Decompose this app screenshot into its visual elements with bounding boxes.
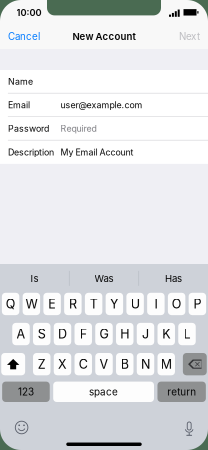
staticText: Z [38,357,46,372]
button[interactable]: N [137,353,154,375]
staticText: My Email Account [61,147,134,157]
button[interactable]: O [168,293,185,315]
staticText: O [172,296,182,312]
button[interactable]: Dictation [176,417,202,441]
button[interactable]: F [74,323,92,345]
button[interactable]: E [43,293,61,315]
staticText: Was [94,273,113,284]
button[interactable]: Q [2,293,19,315]
button[interactable]: Y [106,293,123,315]
button[interactable]: J [137,323,154,345]
button[interactable]: W [23,293,40,315]
staticText: Has [165,273,182,284]
button[interactable]: T [85,293,102,315]
button[interactable]: Description [0,140,208,164]
staticText: K [162,326,170,342]
staticText: C [79,357,88,372]
staticText: G [99,326,108,342]
button[interactable]: Name [0,70,208,93]
staticText: New Account [72,31,135,42]
button[interactable]: V [95,353,113,375]
button[interactable]: Is [0,264,69,293]
staticText: A [16,326,25,342]
staticText: X [58,357,67,372]
button[interactable]: Was [69,264,138,293]
button[interactable]: Next [171,24,208,49]
staticText: Password [8,123,49,134]
button[interactable]: Email [0,93,208,117]
button[interactable]: Password [0,117,208,140]
button[interactable]: Z [33,353,50,375]
staticText: U [131,296,140,312]
button[interactable]: I [147,293,165,315]
button[interactable]: D [54,323,71,345]
staticText: W [25,296,37,312]
staticText: S [38,326,46,342]
button[interactable]: P [189,293,206,315]
button[interactable]: R [64,293,82,315]
button[interactable]: X [54,353,71,375]
staticText: Name [8,76,33,87]
staticText: return [167,386,196,398]
button[interactable]: K [157,323,175,345]
button[interactable]: L [178,323,196,345]
staticText: Is [30,273,38,284]
staticText: Q [6,296,16,312]
button[interactable]: Has [139,264,208,293]
button[interactable]: 123 [2,382,50,402]
button[interactable]: B [116,353,133,375]
staticText: Required [61,123,97,134]
staticText: 10:00 [17,7,42,18]
staticText: P [193,296,201,312]
staticText: R [69,296,77,312]
button[interactable]: return [157,382,206,402]
staticText: space [89,386,118,398]
staticText: J [142,326,149,342]
staticText: L [183,326,190,342]
button[interactable]: A [12,323,30,345]
button[interactable]: C [74,353,92,375]
button[interactable]: Cancel [0,24,48,49]
button[interactable]: Emoji keyboard [6,417,32,441]
staticText: E [48,296,56,312]
button[interactable]: Delete [183,353,207,375]
button[interactable]: M [157,353,175,375]
staticText: M [161,357,172,372]
staticText: Y [110,296,119,312]
staticText: Cancel [8,31,40,42]
button[interactable]: S [33,323,50,345]
staticText: Email [8,100,30,110]
staticText: F [80,326,87,342]
button[interactable]: U [126,293,144,315]
staticText: V [99,357,108,372]
staticText: D [58,326,67,342]
button[interactable]: G [95,323,113,345]
staticText: Description [8,147,54,157]
button[interactable]: space [53,382,154,402]
staticText: I [154,296,157,312]
button[interactable]: Shift [1,353,25,375]
button[interactable]: H [116,323,133,345]
staticText: B [121,357,129,372]
staticText: 123 [18,386,34,398]
staticText: H [120,326,129,342]
staticText: user@example.com [61,100,143,110]
staticText: T [90,296,98,312]
staticText: N [141,357,150,372]
staticText: Next [179,31,200,42]
